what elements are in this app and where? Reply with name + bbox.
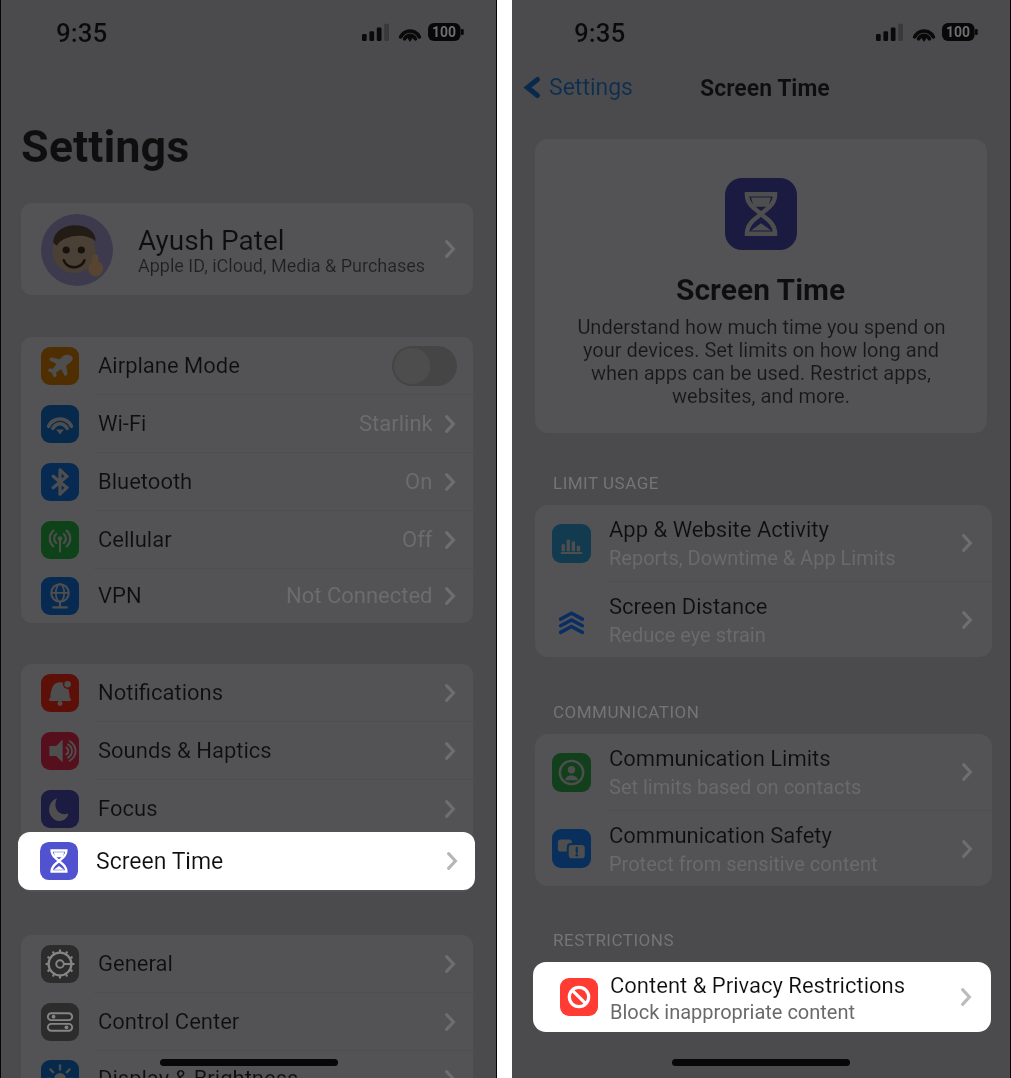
staticText: Understand how much time you spend on [577,315,946,338]
staticText: Airplane Mode [98,353,240,379]
staticText: Communication Safety [609,823,832,849]
staticText: On [405,469,433,495]
button[interactable]: Communication Limits [535,734,992,810]
other: Back to Settings [525,77,540,98]
staticText: Ayush Patel [138,224,285,257]
staticText: Bluetooth [98,469,193,495]
staticText: Communication Limits [609,746,831,772]
button[interactable]: Ayush Patel [21,203,473,295]
staticText: Cellular [98,527,172,553]
staticText: 100 [946,24,971,40]
button[interactable]: Screen Time [18,832,475,890]
button[interactable]: Content & Privacy Restrictions [533,962,991,1032]
button[interactable]: Screen Time [21,838,473,892]
staticText: COMMUNICATION [553,702,700,722]
staticText: VPN [98,583,142,609]
staticText: Sounds & Haptics [98,738,272,764]
staticText: Settings [21,120,190,173]
staticText: General [98,951,173,977]
staticText: when apps can be used. Restrict apps, [591,361,931,384]
staticText: Apple ID, iCloud, Media & Purchases [138,255,426,276]
staticText: Screen Time [96,848,224,875]
button[interactable]: Communication Safety [535,811,992,886]
button[interactable]: General [21,935,473,992]
staticText: LIMIT USAGE [553,473,659,493]
staticText: Focus [98,796,158,822]
button[interactable]: Wi-Fi [21,395,473,452]
staticText: Not Connected [286,583,433,609]
staticText: Screen Time [676,272,846,307]
button[interactable]: App & Website Activity [535,505,992,581]
button[interactable]: VPN [21,569,473,623]
button[interactable]: Notifications [21,664,473,721]
button[interactable]: Bluetooth [21,453,473,510]
staticText: Settings [549,74,633,101]
staticText: Notifications [98,680,224,706]
staticText: Reduce eye strain [609,623,766,646]
button[interactable]: Screen Distance [535,582,992,657]
staticText: App & Website Activity [609,517,829,543]
staticText: 100 [432,24,457,40]
staticText: Block inappropriate content [610,1000,856,1023]
staticText: Wi-Fi [98,411,147,437]
button[interactable]: Focus [21,780,473,837]
button[interactable]: Cellular [21,511,473,568]
staticText: RESTRICTIONS [553,930,674,950]
button[interactable]: Airplane Mode [21,337,473,394]
button[interactable]: Display & Brightness [21,1051,473,1078]
staticText: Screen Distance [609,594,768,620]
button[interactable]: Sounds & Haptics [21,722,473,779]
staticText: Content & Privacy Restrictions [610,973,906,999]
staticText: Display & Brightness [98,1066,299,1078]
staticText: Protect from sensitive content [609,852,878,875]
staticText: 9:35 [56,18,108,48]
staticText: Off [402,527,433,553]
staticText: Control Center [98,1009,240,1035]
staticText: your devices. Set limits on how long and [583,338,939,361]
staticText: 9:35 [574,18,626,48]
staticText: Reports, Downtime & App Limits [609,546,896,569]
button[interactable]: Back to Settings [520,66,639,108]
staticText: Screen Time [700,75,830,102]
button[interactable]: Control Center [21,993,473,1050]
staticText: Screen Time [98,852,220,878]
staticText: Starlink [359,411,433,437]
staticText: Set limits based on contacts [609,775,862,798]
staticText: websites, and more. [672,384,850,407]
